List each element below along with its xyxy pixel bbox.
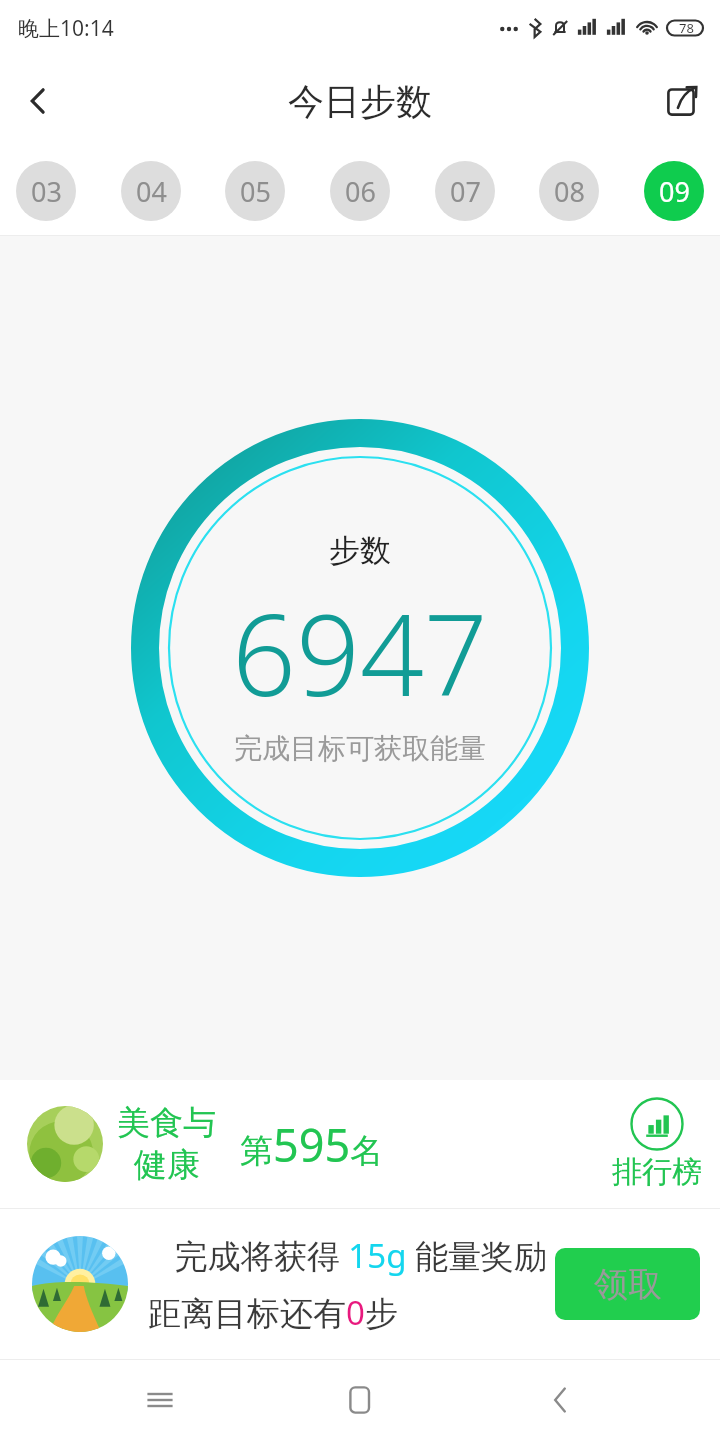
- button[interactable]: 09: [644, 161, 704, 221]
- staticText: 04: [136, 173, 167, 210]
- button[interactable]: Share: [644, 63, 720, 139]
- button[interactable]: 05: [225, 161, 285, 221]
- button[interactable]: 领取: [555, 1248, 700, 1320]
- staticText: 09: [659, 173, 690, 210]
- staticText: 78: [679, 19, 694, 37]
- button[interactable]: Back: [520, 1360, 600, 1440]
- button[interactable]: Home: [320, 1360, 400, 1440]
- button[interactable]: 06: [330, 161, 390, 221]
- staticText: 今日步数: [288, 79, 432, 124]
- staticText: 03: [31, 173, 62, 210]
- staticText: 第595名: [240, 1114, 384, 1175]
- button[interactable]: Back: [0, 63, 76, 139]
- button[interactable]: 07: [435, 161, 495, 221]
- button[interactable]: 美食与: [0, 1080, 720, 1208]
- staticText: 步数: [329, 531, 391, 570]
- staticText: 晚上10:14: [18, 14, 114, 43]
- button[interactable]: Menu: [120, 1360, 200, 1440]
- staticText: 排行榜: [612, 1153, 702, 1191]
- button[interactable]: 04: [121, 161, 181, 221]
- staticText: 健康: [134, 1144, 200, 1186]
- staticText: 领取: [594, 1263, 662, 1306]
- staticText: 06: [345, 173, 376, 210]
- button[interactable]: 08: [539, 161, 599, 221]
- staticText: 距离目标还有0步: [148, 1290, 547, 1335]
- staticText: 05: [240, 173, 271, 210]
- staticText: 美食与: [117, 1102, 216, 1144]
- staticText: 完成目标可获取能量: [234, 731, 486, 766]
- staticText: 08: [554, 173, 585, 210]
- staticText: 6947: [232, 576, 488, 729]
- button[interactable]: 03: [16, 161, 76, 221]
- staticText: 07: [450, 173, 481, 210]
- button[interactable]: 排行榜: [612, 1097, 702, 1191]
- staticText: 完成将获得 15g 能量奖励: [148, 1233, 547, 1278]
